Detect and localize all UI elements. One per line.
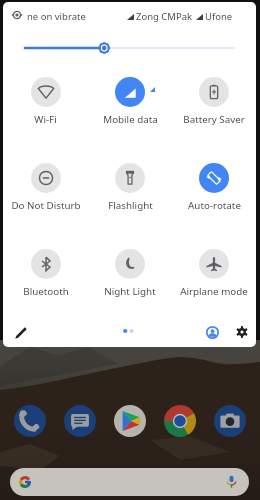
button[interactable]: Search xyxy=(10,468,249,496)
button[interactable]: Camera xyxy=(214,405,246,437)
staticText: ne on vibrate xyxy=(27,10,86,23)
staticText: Bluetooth xyxy=(23,285,69,298)
staticText: Auto-rotate xyxy=(188,199,241,212)
button[interactable]: Do Not Disturb xyxy=(3,148,88,234)
staticText: Flashlight xyxy=(108,199,153,212)
staticText: Battery Saver xyxy=(183,113,245,126)
button[interactable]: Play Store xyxy=(114,405,146,437)
staticText: Airplane mode xyxy=(180,285,248,298)
staticText: Do Not Disturb xyxy=(11,199,81,212)
button[interactable]: Battery Saver xyxy=(172,62,256,148)
button[interactable]: Settings xyxy=(230,320,254,344)
staticText: Ufone xyxy=(205,10,233,23)
button[interactable]: Flashlight xyxy=(88,148,172,234)
button[interactable]: Wi-Fi xyxy=(3,62,88,148)
button[interactable]: Mobile data xyxy=(88,62,172,148)
button[interactable]: Bluetooth xyxy=(3,234,88,320)
button[interactable]: Edit tiles xyxy=(9,321,33,345)
button[interactable]: Chrome xyxy=(164,405,196,437)
staticText: Mobile data xyxy=(103,113,158,126)
button[interactable]: Messages xyxy=(64,405,96,437)
button[interactable]: Auto-rotate xyxy=(172,148,256,234)
staticText: Night Light xyxy=(104,285,156,298)
staticText: Zong CMPak xyxy=(136,10,193,23)
button[interactable]: Account xyxy=(200,320,224,344)
button[interactable]: Night Light xyxy=(88,234,172,320)
button[interactable]: Phone xyxy=(14,405,46,437)
button[interactable]: Airplane mode xyxy=(172,234,256,320)
staticText: Wi-Fi xyxy=(34,113,57,126)
